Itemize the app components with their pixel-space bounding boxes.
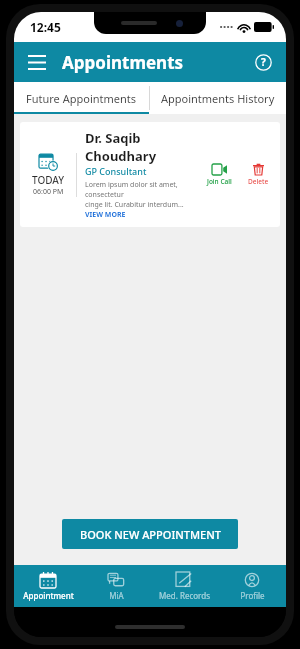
staticText: Profile	[240, 590, 265, 601]
button[interactable]: Med. Records	[150, 565, 218, 607]
button[interactable]: Appointment	[14, 565, 82, 607]
button[interactable]: Join Call	[202, 164, 236, 186]
staticText: Med. Records	[159, 590, 210, 601]
staticText: Lorem ipsum dolor sit amet, consectetur	[85, 180, 198, 200]
staticText: TODAY	[32, 173, 65, 187]
button[interactable]: TODAY	[20, 122, 280, 227]
staticText: MiA	[109, 590, 124, 601]
staticText: 06:00 PM	[33, 187, 64, 197]
button[interactable]: Menu	[20, 45, 54, 79]
button[interactable]: BOOK NEW APPOINTMENT	[62, 519, 238, 549]
staticText: Dr. Saqib Choudhary	[85, 129, 198, 165]
staticText: Delete	[248, 177, 269, 186]
staticText: Appointments	[62, 51, 184, 74]
button[interactable]: Help	[248, 47, 278, 77]
staticText: 12:45	[30, 19, 61, 35]
staticText: Appointment	[23, 590, 74, 601]
button[interactable]: MiA	[82, 565, 150, 607]
staticText: BOOK NEW APPOINTMENT	[80, 527, 221, 542]
staticText: Appointments History	[161, 91, 275, 106]
button[interactable]: Profile	[218, 565, 286, 607]
staticText: cinge lit. Curabitur interdum... VIEW MO…	[85, 200, 198, 220]
button[interactable]: Appointments History	[150, 82, 286, 114]
staticText: GP Consultant	[85, 165, 147, 177]
staticText: ?	[261, 55, 266, 69]
staticText: Join Call	[207, 177, 232, 186]
staticText: Future Appointments	[26, 91, 137, 106]
button[interactable]: Future Appointments	[14, 82, 149, 114]
button[interactable]: Delete	[242, 163, 274, 186]
